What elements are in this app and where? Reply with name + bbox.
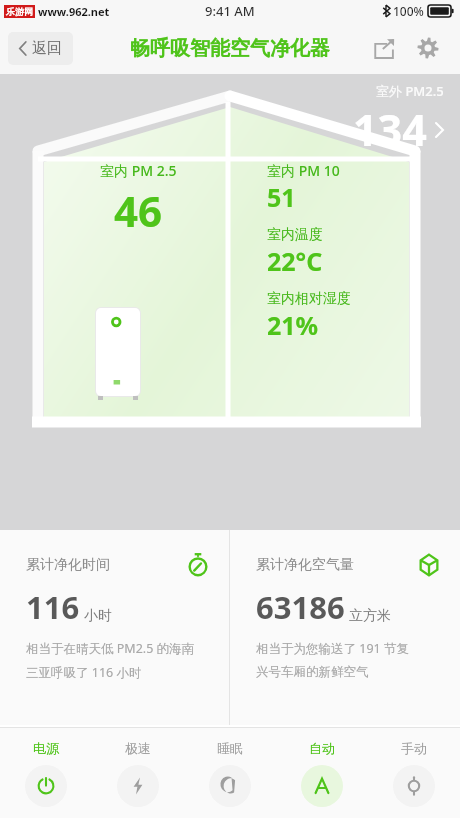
staticText: 返回 [32,39,62,58]
staticText: 累计净化空气量 [256,556,354,574]
staticText: 21% [267,308,319,342]
staticText: 三亚呼吸了 116 小时 [26,664,142,681]
button[interactable]: 累计净化空气量 [230,530,460,725]
button[interactable]: Settings [410,30,446,66]
staticText: 极速 [125,740,151,756]
button[interactable]: Share [366,30,402,66]
staticText: 睡眠 [217,740,243,756]
staticText: 63186 [256,586,345,628]
button[interactable]: 极速 [92,728,184,818]
button[interactable]: 返回 [8,32,73,65]
staticText: www.962.net [38,4,110,19]
button[interactable]: 自动 [276,728,368,818]
staticText: 51 [267,180,296,214]
staticText: 乐游网 [6,6,33,17]
staticText: 46 [114,182,163,239]
staticText: 电源 [33,740,59,756]
staticText: 100% [393,3,424,19]
staticText: 小时 [84,607,112,625]
staticText: 手动 [401,740,427,756]
staticText: 立方米 [349,607,391,625]
staticText: 兴号车厢的新鲜空气 [256,664,369,680]
button[interactable]: 睡眠 [184,728,276,818]
staticText: 室内相对湿度 [267,290,351,308]
button[interactable]: 电源 [0,728,92,818]
staticText: 室内温度 [267,226,323,244]
staticText: 134 [353,100,427,159]
staticText: 9:41 AM [205,2,255,20]
staticText: 自动 [309,740,335,756]
staticText: 室内 PM 2.5 [100,161,177,180]
staticText: 22°C [267,244,323,278]
staticText: 室内 PM 10 [267,161,340,180]
staticText: 畅呼吸智能空气净化器 [130,36,330,61]
staticText: 室外 PM2.5 [376,82,444,100]
button[interactable]: 手动 [368,728,460,818]
button[interactable]: 累计净化时间 [0,530,229,725]
staticText: 累计净化时间 [26,556,110,574]
staticText: 116 [26,586,80,628]
staticText: 相当于在晴天低 PM2.5 的海南 [26,640,195,657]
staticText: 相当于为您输送了 191 节复 [256,640,409,657]
button[interactable]: 室外 PM2.5 [353,82,444,159]
